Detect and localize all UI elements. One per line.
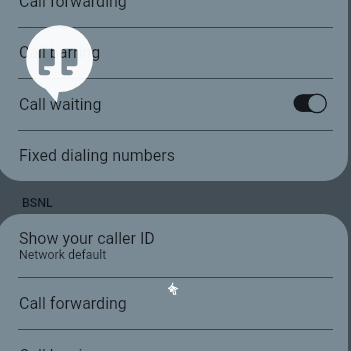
staticText: Fixed dialing numbers [19,146,176,165]
button[interactable]: Call barring [0,27,348,78]
staticText: Network default [19,248,107,262]
staticText: Call forwarding [19,294,127,313]
staticText: Call forwarding [19,0,127,11]
staticText: Call waiting [19,95,102,114]
staticText: Call barring [19,346,101,351]
staticText: Show your caller ID [19,229,155,248]
button[interactable]: Show your caller ID [0,218,348,273]
button[interactable]: Call waiting toggle [289,89,331,118]
button[interactable]: Call waiting [0,78,348,130]
staticText: BSNL [22,195,53,210]
button[interactable]: Call forwarding [0,277,348,329]
staticText: Call barring [19,43,101,62]
button[interactable]: Call barring [0,329,348,351]
button[interactable]: Fixed dialing numbers [0,130,348,181]
button[interactable]: Call forwarding [0,0,348,27]
